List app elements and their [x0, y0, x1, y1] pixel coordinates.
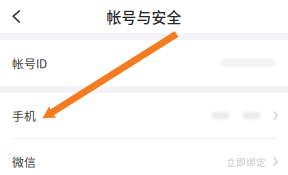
staticText: 微信 — [12, 153, 36, 170]
button[interactable]: 帐号ID — [0, 40, 288, 86]
staticText: 帐号ID — [12, 54, 47, 72]
button[interactable]: Back — [0, 0, 33, 33]
button[interactable]: 手机 — [0, 93, 288, 138]
staticText: 手机 — [12, 107, 36, 124]
staticText: 立即绑定 — [226, 154, 266, 168]
button[interactable]: 微信 — [0, 139, 288, 175]
staticText: 帐号与安全 — [106, 6, 181, 27]
